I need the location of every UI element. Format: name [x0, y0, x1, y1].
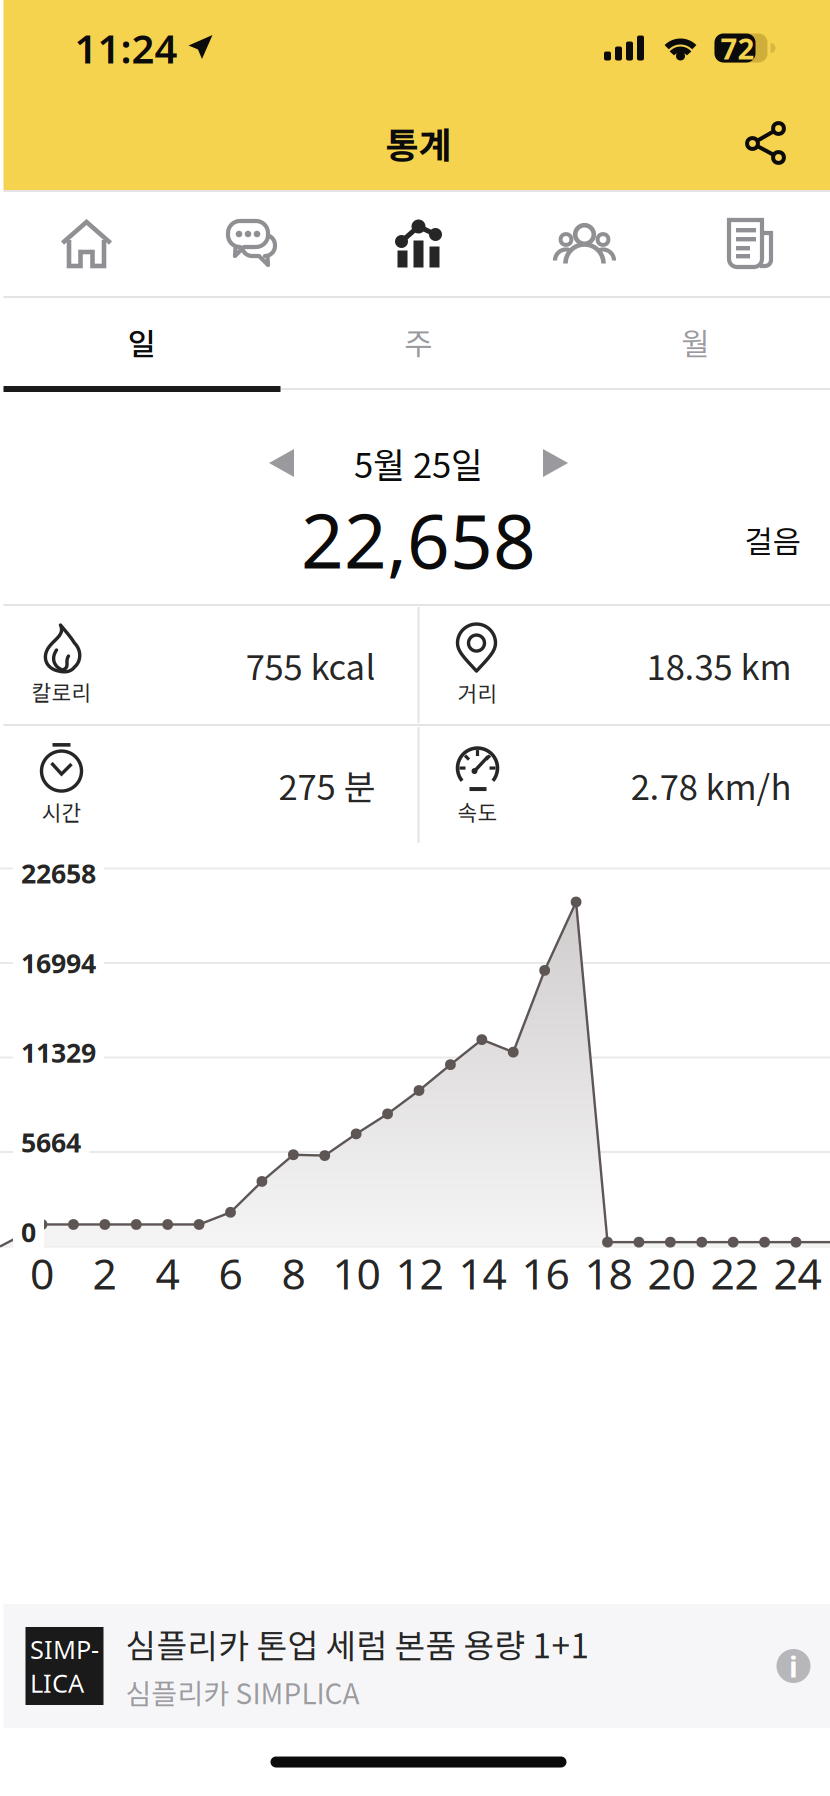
staticText: 걸음: [744, 517, 800, 562]
staticText: 4: [155, 1245, 179, 1301]
button[interactable]: 월: [557, 298, 830, 386]
staticText: i: [789, 1646, 798, 1685]
button[interactable]: Chat: [169, 192, 335, 296]
staticText: 5664: [21, 1124, 81, 1160]
staticText: 18.35 km: [646, 640, 791, 690]
staticText: 심플리카 톤업 세럼 본품 용량 1+1: [125, 1620, 589, 1668]
staticText: 5월 25일: [354, 438, 483, 488]
staticText: 22,658: [301, 490, 536, 589]
staticText: 심플리카 SIMPLICA: [125, 1672, 359, 1712]
button[interactable]: Home: [3, 192, 169, 296]
staticText: 14: [458, 1245, 506, 1301]
staticText: 12: [395, 1245, 443, 1301]
button[interactable]: 일: [3, 298, 280, 386]
staticText: 10: [332, 1245, 380, 1301]
staticText: 755 kcal: [245, 640, 375, 690]
staticText: 속도: [457, 796, 497, 827]
staticText: 2: [92, 1245, 116, 1301]
staticText: 22658: [21, 855, 96, 891]
staticText: 18: [584, 1245, 632, 1301]
staticText: 통계: [385, 117, 451, 169]
staticText: 0: [21, 1214, 36, 1249]
button[interactable]: Statistics: [335, 192, 501, 296]
button[interactable]: Next day: [523, 435, 588, 491]
staticText: 11329: [21, 1035, 96, 1070]
staticText: 22: [710, 1245, 758, 1301]
staticText: SIMPLICA: [30, 1632, 99, 1700]
staticText: 6: [218, 1245, 242, 1301]
staticText: 20: [647, 1245, 695, 1301]
staticText: 275 분: [278, 760, 375, 810]
staticText: 칼로리: [31, 676, 91, 707]
staticText: 거리: [457, 677, 497, 708]
button[interactable]: Friends: [501, 192, 667, 296]
staticText: 월: [681, 320, 709, 364]
staticText: 0: [30, 1245, 54, 1301]
staticText: 8: [281, 1245, 305, 1301]
staticText: 16: [521, 1245, 569, 1301]
staticText: 16994: [21, 945, 96, 980]
staticText: 주: [404, 320, 432, 364]
button[interactable]: 주: [280, 298, 557, 386]
staticText: 72: [720, 28, 754, 67]
staticText: 24: [773, 1245, 821, 1301]
button[interactable]: News: [667, 192, 830, 296]
staticText: 2.78 km/h: [630, 760, 791, 810]
button[interactable]: Previous day: [249, 435, 314, 491]
button[interactable]: Share: [720, 97, 830, 188]
button[interactable]: SIMPLICA: [3, 1604, 830, 1728]
staticText: 11:24: [74, 21, 177, 74]
staticText: 일: [128, 320, 156, 364]
staticText: 시간: [41, 796, 81, 827]
